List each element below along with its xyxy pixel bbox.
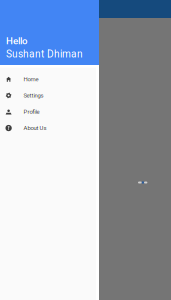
- button[interactable]: Home: [0, 71, 99, 87]
- button[interactable]: Profile: [0, 104, 99, 120]
- button[interactable]: Close menu: [0, 18, 171, 300]
- staticText: Profile: [23, 108, 39, 115]
- button[interactable]: Hello: [0, 0, 99, 65]
- staticText: About Us: [23, 125, 46, 131]
- button[interactable]: Settings: [0, 87, 99, 104]
- button[interactable]: About Us: [0, 120, 99, 136]
- staticText: Home: [23, 76, 38, 83]
- staticText: Sushant Dhiman: [6, 48, 83, 60]
- staticText: Hello: [6, 35, 28, 47]
- staticText: Settings: [23, 92, 43, 99]
